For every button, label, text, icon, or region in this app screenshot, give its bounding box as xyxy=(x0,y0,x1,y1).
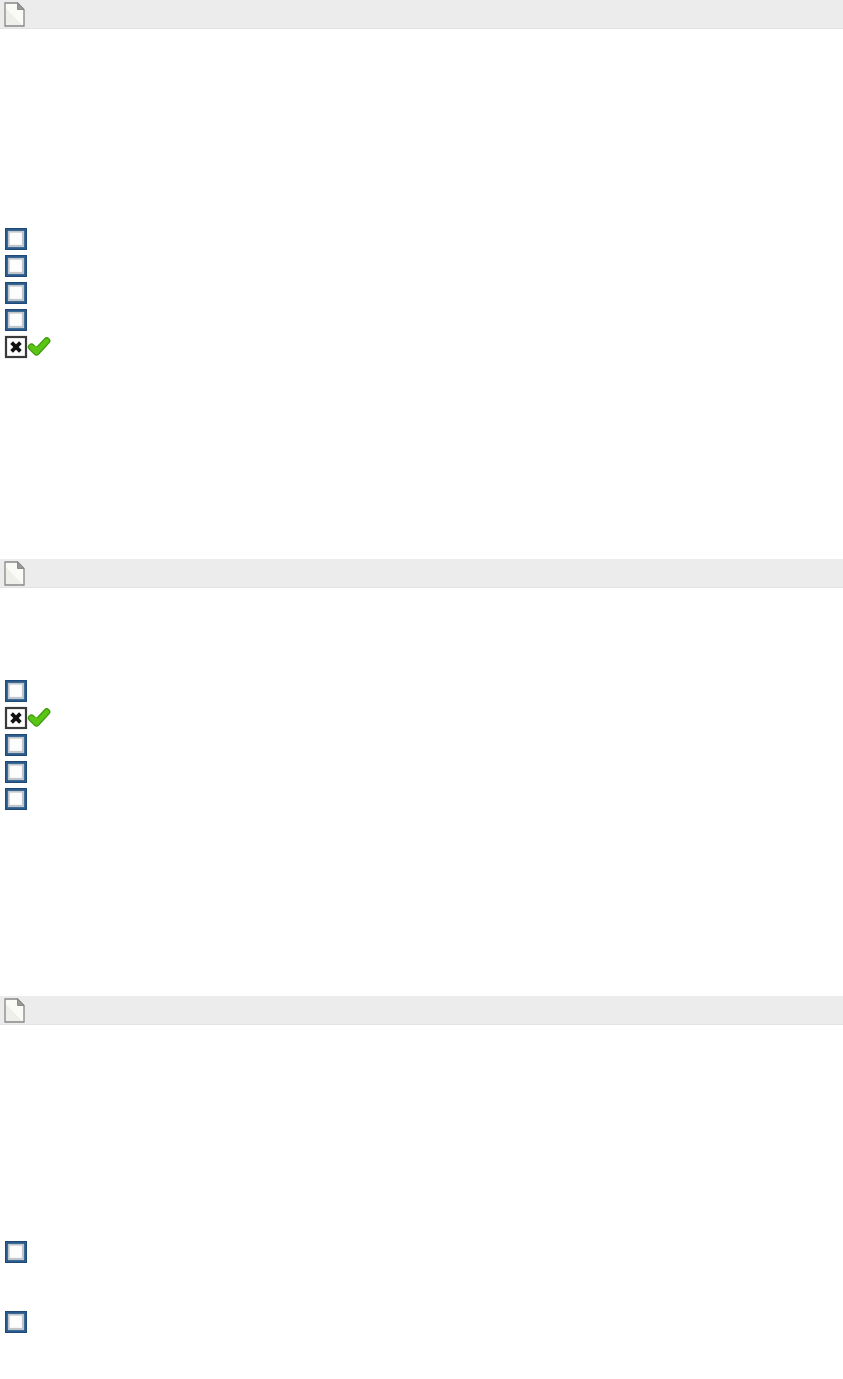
button[interactable]: Unchecked option xyxy=(0,787,843,814)
button[interactable]: Unchecked option xyxy=(0,760,843,787)
button[interactable]: Unchecked option xyxy=(5,228,27,250)
button[interactable]: Unchecked option xyxy=(5,309,27,331)
button[interactable]: Unchecked option xyxy=(5,734,27,756)
button[interactable]: Unchecked option xyxy=(0,227,843,254)
button[interactable]: Unchecked option xyxy=(0,254,843,281)
button[interactable]: Unchecked option xyxy=(5,680,27,702)
button[interactable]: Unchecked option xyxy=(0,1240,843,1310)
button[interactable]: Correct xyxy=(30,709,48,727)
button[interactable]: Unchecked option xyxy=(5,761,27,783)
button[interactable]: Unchecked option xyxy=(5,788,27,810)
button[interactable]: Correct xyxy=(30,338,48,356)
button[interactable]: Document xyxy=(0,0,843,29)
button[interactable]: Unchecked option xyxy=(0,308,843,335)
other: Document xyxy=(5,999,24,1022)
button[interactable]: Unchecked option xyxy=(5,1311,27,1333)
button[interactable]: Checked option xyxy=(5,336,27,358)
button[interactable]: Unchecked option xyxy=(0,1310,843,1379)
button[interactable]: Checked option xyxy=(0,335,843,362)
button[interactable]: Document xyxy=(0,996,843,1025)
other: Document xyxy=(5,3,24,26)
button[interactable]: Checked option xyxy=(0,706,843,733)
other: Document xyxy=(5,562,24,585)
button[interactable]: Unchecked option xyxy=(5,255,27,277)
button[interactable]: Unchecked option xyxy=(0,733,843,760)
button[interactable]: Checked option xyxy=(5,707,27,729)
button[interactable]: Unchecked option xyxy=(5,1241,27,1263)
button[interactable]: Document xyxy=(0,559,843,588)
button[interactable]: Unchecked option xyxy=(0,281,843,308)
button[interactable]: Unchecked option xyxy=(5,282,27,304)
button[interactable]: Unchecked option xyxy=(0,679,843,706)
